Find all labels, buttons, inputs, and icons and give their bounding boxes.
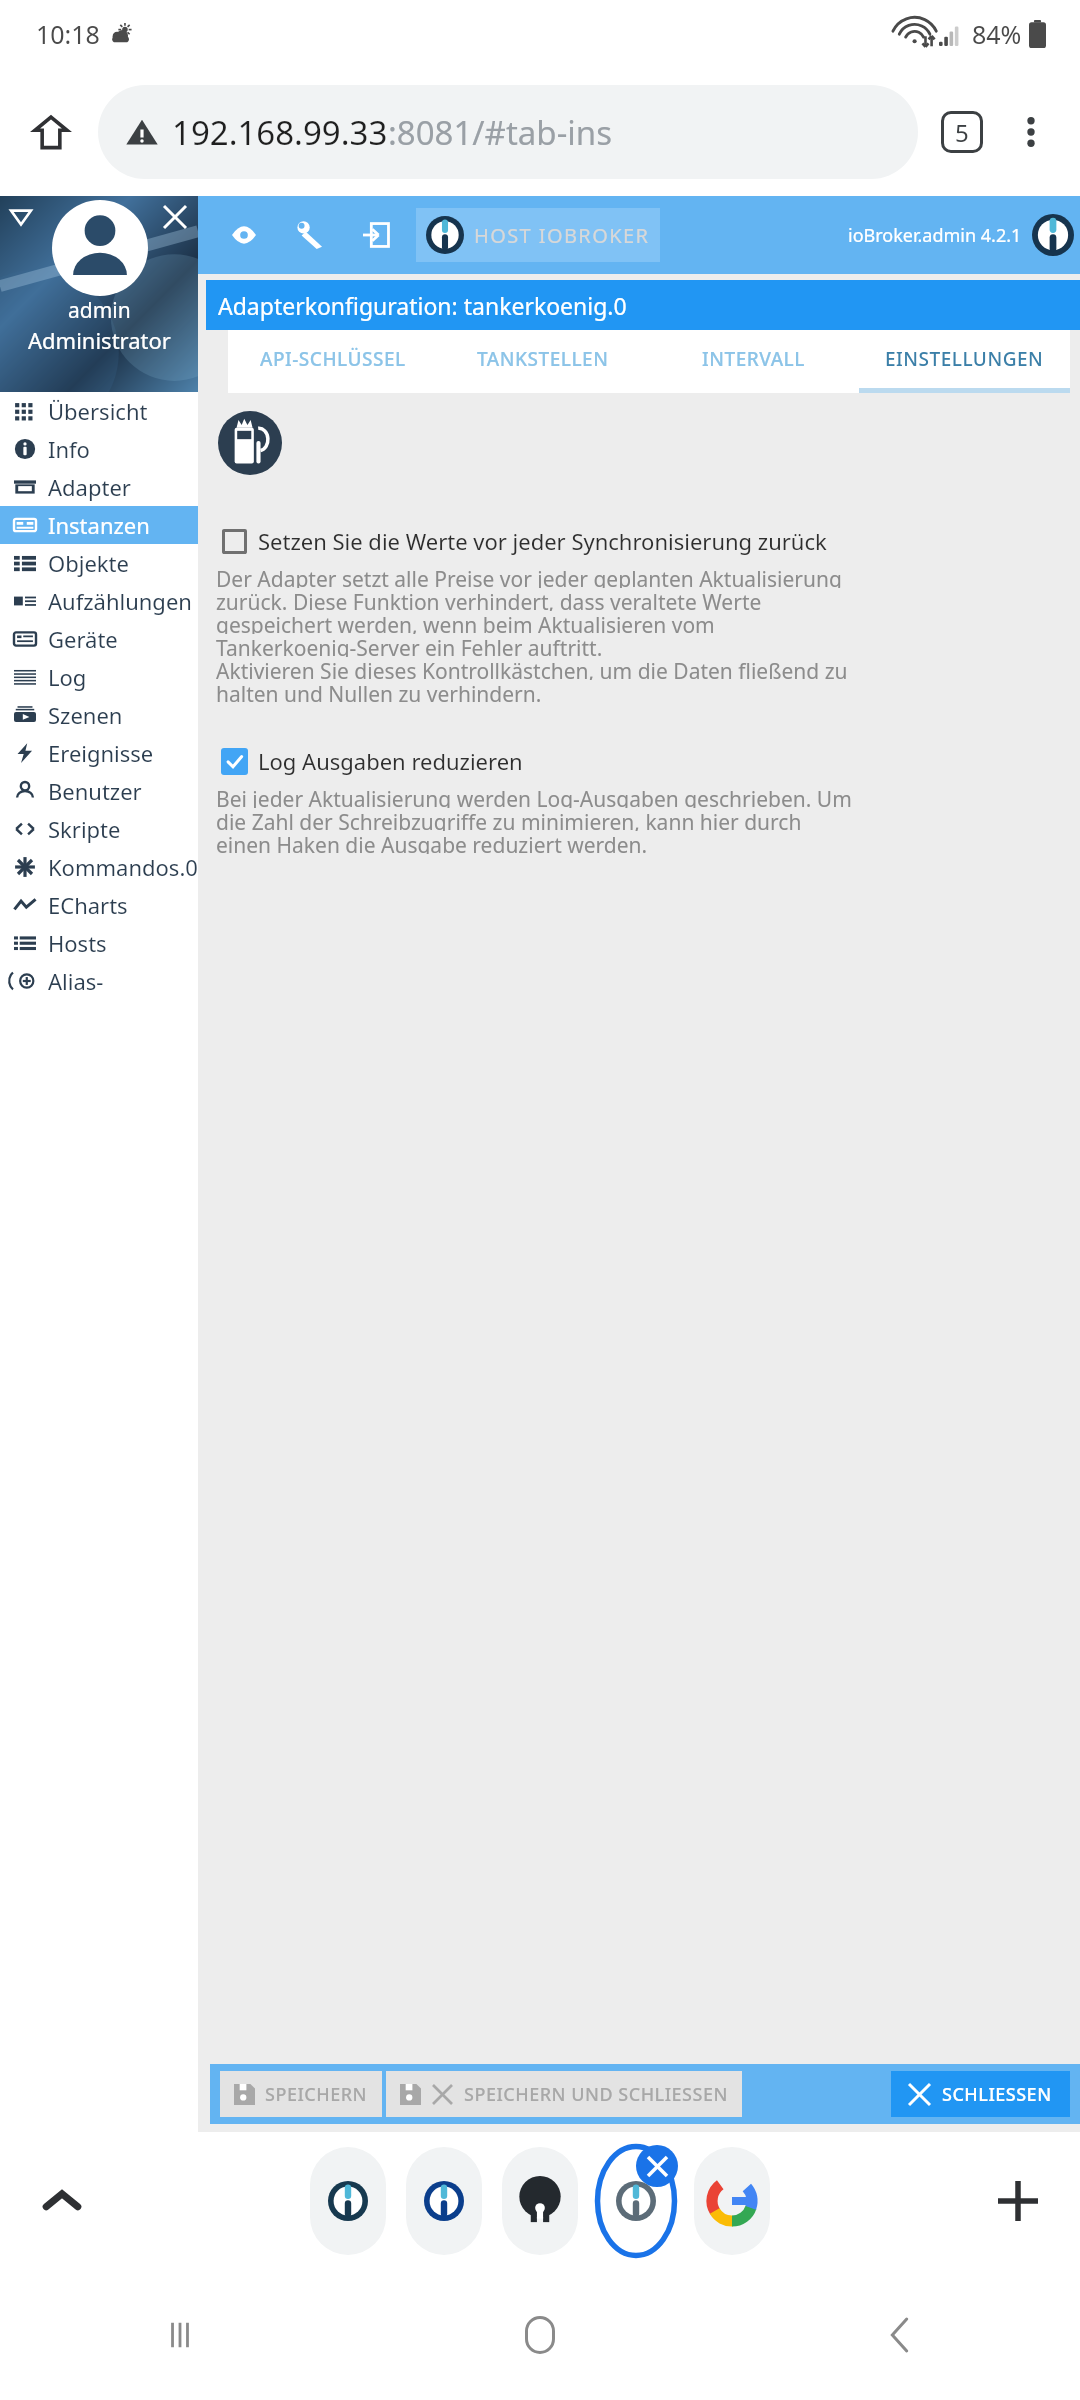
button[interactable]: Setzen Sie die Werte vor jeder Synchroni… bbox=[210, 517, 1080, 565]
button[interactable]: Close menu bbox=[156, 198, 194, 236]
button[interactable]: Expert mode bbox=[220, 211, 268, 259]
button[interactable]: Tab: io-dark bbox=[402, 2143, 486, 2259]
staticText: SCHLIESSEN bbox=[942, 2082, 1052, 2107]
button[interactable]: Recent apps bbox=[0, 2270, 360, 2400]
button[interactable]: Log bbox=[0, 658, 198, 696]
staticText: Log Ausgaben reduzieren bbox=[258, 746, 523, 776]
button[interactable]: 192.168.99.33 bbox=[98, 85, 918, 179]
button[interactable]: HOST IOBROKER bbox=[416, 208, 660, 262]
staticText: Übersicht bbox=[48, 396, 148, 426]
button[interactable]: SCHLIESSEN bbox=[891, 2071, 1070, 2117]
staticText: HOST IOBROKER bbox=[474, 222, 650, 249]
button[interactable]: ECharts bbox=[0, 886, 198, 924]
staticText: Benutzer bbox=[48, 776, 142, 806]
staticText: Ereignisse bbox=[48, 738, 154, 768]
button[interactable]: Expand tab bar bbox=[26, 2165, 98, 2237]
staticText: Administrator bbox=[28, 325, 171, 355]
staticText: Log bbox=[48, 662, 87, 692]
staticText: gespeichert werden, wenn beim Aktualisie… bbox=[216, 611, 715, 634]
staticText: Instanzen bbox=[48, 510, 150, 540]
button[interactable]: Home bbox=[18, 99, 84, 165]
staticText: Hosts bbox=[48, 928, 107, 958]
staticText: Objekte bbox=[48, 548, 129, 578]
staticText: Der Adapter setzt alle Preise vor jeder … bbox=[216, 565, 842, 588]
button[interactable]: Instanzen bbox=[0, 506, 198, 544]
button[interactable]: Tab: google bbox=[690, 2143, 774, 2259]
button[interactable]: Tab: io-light bbox=[306, 2143, 390, 2259]
button[interactable]: Back bbox=[720, 2270, 1080, 2400]
button[interactable]: Benutzer bbox=[0, 772, 198, 810]
staticText: :8081/#tab-ins bbox=[388, 110, 613, 155]
staticText: Setzen Sie die Werte vor jeder Synchroni… bbox=[258, 526, 827, 556]
button[interactable]: INTERVALL bbox=[648, 330, 859, 388]
staticText: 84% bbox=[972, 17, 1022, 51]
staticText: halten und Nullen zu verhindern. bbox=[216, 680, 542, 703]
staticText: zurück. Diese Funktion verhindert, dass … bbox=[216, 588, 762, 611]
staticText: ioBroker.admin 4.2.1 bbox=[848, 223, 1022, 248]
staticText: Aufzählungen bbox=[48, 586, 192, 616]
staticText: SPEICHERN bbox=[265, 2082, 368, 2107]
button[interactable]: More options bbox=[1000, 101, 1062, 163]
staticText: API-SCHLÜSSEL bbox=[260, 346, 406, 372]
button[interactable]: Settings bbox=[286, 211, 334, 259]
staticText: ECharts bbox=[48, 890, 128, 920]
button[interactable]: Hosts bbox=[0, 924, 198, 962]
staticText: SPEICHERN UND SCHLIESSEN bbox=[464, 2082, 728, 2107]
button[interactable]: Collapse menu bbox=[4, 200, 38, 234]
staticText: Geräte bbox=[48, 624, 118, 654]
button[interactable]: API-SCHLÜSSEL bbox=[228, 330, 438, 388]
button[interactable]: Home bbox=[360, 2270, 720, 2400]
button[interactable]: Info bbox=[0, 430, 198, 468]
button[interactable]: Ereignisse bbox=[0, 734, 198, 772]
button[interactable]: New tab bbox=[982, 2165, 1054, 2237]
button[interactable]: Kommandos.0 bbox=[0, 848, 198, 886]
staticText: 5 bbox=[955, 116, 969, 149]
staticText: 192.168.99.33 bbox=[172, 110, 388, 155]
button[interactable]: Adapter bbox=[0, 468, 198, 506]
button[interactable]: Close tab bbox=[636, 2145, 678, 2187]
staticText: Adapter bbox=[48, 472, 131, 502]
button[interactable]: SPEICHERN bbox=[220, 2071, 382, 2117]
button[interactable]: TANKSTELLEN bbox=[438, 330, 648, 388]
button[interactable]: Alias-Manager.0 bbox=[0, 962, 198, 1000]
staticText: Skripte bbox=[48, 814, 121, 844]
button[interactable]: Tab: github bbox=[498, 2143, 582, 2259]
staticText: EINSTELLUNGEN bbox=[885, 346, 1044, 372]
button[interactable]: Log out bbox=[352, 211, 400, 259]
button[interactable]: Aufzählungen bbox=[0, 582, 198, 620]
button[interactable]: Log Ausgaben reduzieren bbox=[210, 737, 1080, 785]
staticText: einen Haken die Ausgabe reduziert werden… bbox=[216, 831, 648, 854]
staticText: die Zahl der Schreibzugriffe zu minimier… bbox=[216, 808, 802, 831]
staticText: 10:18 bbox=[36, 17, 100, 51]
staticText: Szenen bbox=[48, 700, 123, 730]
staticText: INTERVALL bbox=[702, 346, 805, 372]
button[interactable]: Objekte bbox=[0, 544, 198, 582]
button[interactable]: Geräte bbox=[0, 620, 198, 658]
staticText: Adapterkonfiguration: tankerkoenig.0 bbox=[218, 290, 627, 321]
staticText: Tankerkoenig-Server ein Fehler auftritt. bbox=[216, 634, 603, 657]
staticText: Info bbox=[48, 434, 90, 464]
staticText: Alias-Manager.0 bbox=[48, 966, 198, 996]
staticText: Aktivieren Sie dieses Kontrollkästchen, … bbox=[216, 657, 848, 680]
button[interactable]: Szenen bbox=[0, 696, 198, 734]
staticText: admin bbox=[68, 296, 131, 325]
staticText: Kommandos.0 bbox=[48, 852, 198, 882]
button[interactable]: Skripte bbox=[0, 810, 198, 848]
staticText: Bei jeder Aktualisierung werden Log-Ausg… bbox=[216, 785, 852, 808]
button[interactable]: SPEICHERN UND SCHLIESSEN bbox=[386, 2071, 742, 2117]
button[interactable]: EINSTELLUNGEN bbox=[859, 330, 1070, 388]
button[interactable]: Tab: io-gray bbox=[594, 2143, 678, 2259]
button[interactable]: Übersicht bbox=[0, 392, 198, 430]
staticText: TANKSTELLEN bbox=[477, 346, 609, 372]
button[interactable]: Open tabs, 5 bbox=[928, 98, 996, 166]
